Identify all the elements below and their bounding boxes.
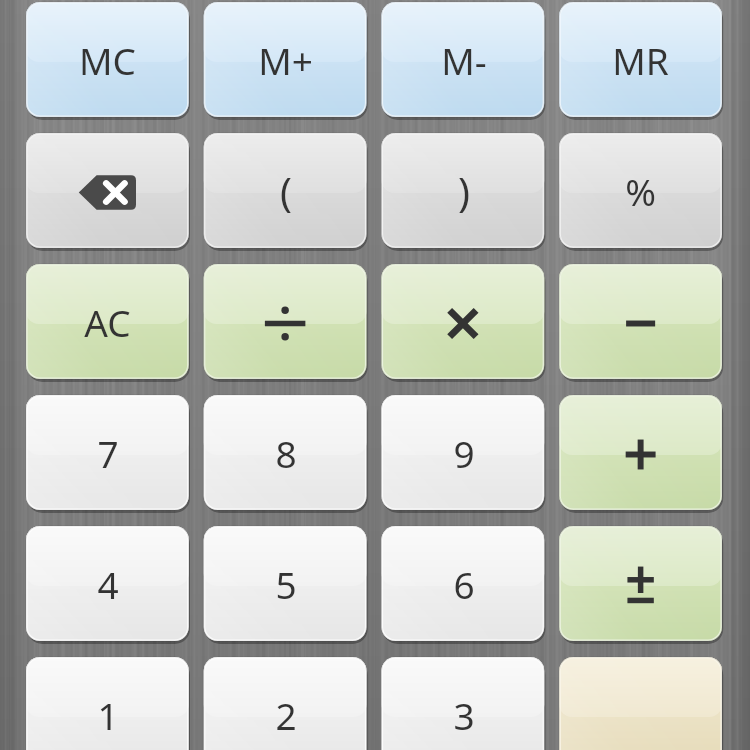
button[interactable]: 3 bbox=[382, 657, 545, 750]
staticText: ( bbox=[280, 164, 292, 218]
staticText: AC bbox=[84, 297, 131, 347]
staticText: M- bbox=[441, 35, 487, 85]
button[interactable]: % bbox=[559, 133, 722, 248]
staticText: 9 bbox=[453, 428, 475, 478]
button[interactable]: 8 bbox=[204, 395, 367, 510]
staticText: 5 bbox=[275, 559, 297, 609]
button[interactable]: 9 bbox=[382, 395, 545, 510]
staticText: % bbox=[625, 166, 656, 216]
button[interactable]: M+ bbox=[204, 2, 367, 117]
staticText: 6 bbox=[453, 559, 475, 609]
button[interactable]: 2 bbox=[204, 657, 367, 750]
button[interactable]: Equals bbox=[559, 657, 722, 750]
button[interactable]: 7 bbox=[26, 395, 189, 510]
button[interactable]: Minus bbox=[559, 264, 722, 379]
staticText: M+ bbox=[258, 35, 313, 85]
staticText: 8 bbox=[275, 428, 297, 478]
button[interactable]: 5 bbox=[204, 526, 367, 641]
button[interactable]: Backspace bbox=[26, 133, 189, 248]
button[interactable]: 6 bbox=[382, 526, 545, 641]
button[interactable]: Divide bbox=[204, 264, 367, 379]
staticText: 1 bbox=[97, 690, 119, 740]
button[interactable]: ) bbox=[382, 133, 545, 248]
staticText: 4 bbox=[97, 559, 119, 609]
staticText: 7 bbox=[97, 428, 119, 478]
button[interactable]: Multiply bbox=[382, 264, 545, 379]
button[interactable]: M- bbox=[382, 2, 545, 117]
staticText: 2 bbox=[275, 690, 297, 740]
staticText: MC bbox=[79, 35, 136, 85]
button[interactable]: 1 bbox=[26, 657, 189, 750]
button[interactable]: AC bbox=[26, 264, 189, 379]
staticText: ) bbox=[458, 164, 470, 218]
button[interactable]: ( bbox=[204, 133, 367, 248]
button[interactable]: MC bbox=[26, 2, 189, 117]
button[interactable]: MR bbox=[559, 2, 722, 117]
button[interactable]: 4 bbox=[26, 526, 189, 641]
staticText: 3 bbox=[453, 690, 475, 740]
button[interactable]: Plus or minus bbox=[559, 526, 722, 641]
button[interactable]: Plus bbox=[559, 395, 722, 510]
staticText: MR bbox=[612, 35, 669, 85]
